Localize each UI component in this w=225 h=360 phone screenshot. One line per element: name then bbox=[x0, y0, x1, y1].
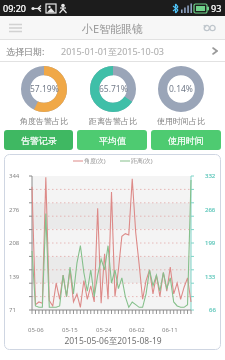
button[interactable]: Menu bbox=[0, 16, 30, 40]
staticText: 0.14% bbox=[169, 83, 193, 95]
staticText: 208 bbox=[9, 239, 20, 247]
staticText: 选择日期: bbox=[6, 45, 45, 57]
staticText: 344 bbox=[9, 172, 20, 180]
staticText: 05-06 bbox=[28, 326, 44, 334]
staticText: 139 bbox=[9, 273, 20, 281]
staticText: 小E智能眼镜 bbox=[82, 21, 144, 36]
staticText: 使用时间 bbox=[168, 135, 204, 146]
staticText: 66 bbox=[209, 306, 216, 314]
staticText: 06-11 bbox=[162, 326, 178, 334]
staticText: 距离告警占比 bbox=[89, 116, 137, 126]
button[interactable]: Glasses bbox=[195, 16, 225, 40]
button[interactable]: 使用时间 bbox=[151, 130, 221, 150]
staticText: 332 bbox=[205, 172, 216, 180]
staticText: 2015-05-06至2015-08-19 bbox=[64, 335, 162, 347]
button[interactable]: 选择日期: bbox=[0, 40, 225, 62]
button[interactable]: 告警记录 bbox=[4, 130, 73, 150]
staticText: 角度(次) bbox=[84, 157, 106, 165]
staticText: 距离(次) bbox=[131, 157, 153, 165]
staticText: 05-15 bbox=[62, 326, 78, 334]
staticText: 71 bbox=[9, 306, 16, 314]
staticText: 使用时间占比 bbox=[157, 116, 205, 126]
button[interactable]: 平均值 bbox=[77, 130, 147, 150]
staticText: 2015-01-01至2015-10-03 bbox=[61, 45, 164, 57]
staticText: 05-24 bbox=[96, 326, 112, 334]
staticText: 06-02 bbox=[129, 326, 145, 334]
staticText: 09:20 bbox=[3, 2, 27, 14]
staticText: 告警记录 bbox=[21, 135, 57, 146]
staticText: 平均值 bbox=[99, 135, 126, 146]
staticText: 199 bbox=[205, 239, 216, 247]
staticText: 93 bbox=[211, 2, 222, 14]
staticText: 266 bbox=[205, 206, 216, 214]
staticText: 65.71% bbox=[99, 83, 128, 95]
button[interactable]: 344 bbox=[4, 154, 221, 350]
staticText: 角度告警占比 bbox=[20, 116, 68, 126]
staticText: 133 bbox=[205, 273, 216, 281]
staticText: 276 bbox=[9, 206, 20, 214]
staticText: 57.19% bbox=[30, 83, 59, 95]
